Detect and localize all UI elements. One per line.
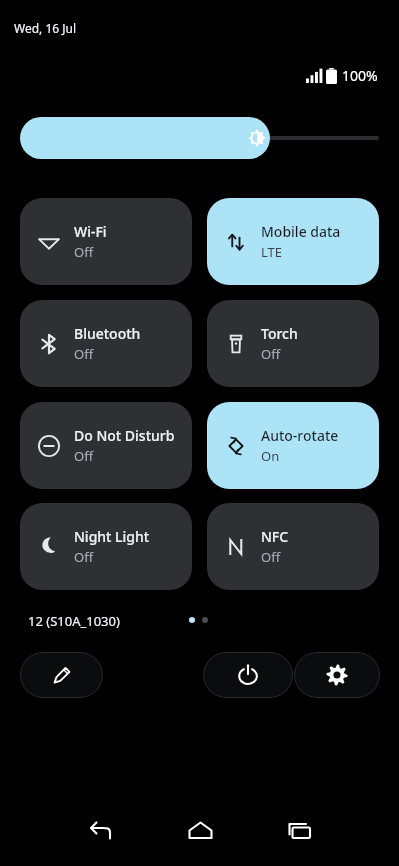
staticText: 12 (S10A_1030): [28, 612, 120, 630]
staticText: Auto-rotate: [261, 426, 339, 445]
staticText: Wi-Fi: [74, 222, 107, 241]
button[interactable]: Auto-rotate: [207, 402, 379, 489]
staticText: Off: [74, 548, 94, 566]
staticText: Off: [261, 548, 281, 566]
button[interactable]: NFC: [207, 503, 379, 590]
staticText: Mobile data: [261, 222, 341, 241]
staticText: Bluetooth: [74, 324, 141, 343]
staticText: Wed, 16 Jul: [14, 20, 77, 36]
staticText: LTE: [261, 243, 283, 261]
staticText: Off: [74, 243, 94, 261]
button[interactable]: Back: [74, 804, 126, 856]
button[interactable]: Recents: [273, 804, 325, 856]
button[interactable]: Torch: [207, 300, 379, 387]
staticText: On: [261, 447, 280, 465]
button[interactable]: Do Not Disturb: [20, 402, 192, 489]
staticText: Off: [74, 447, 94, 465]
button[interactable]: Night Light: [20, 503, 192, 590]
staticText: Off: [74, 345, 94, 363]
button[interactable]: Edit tiles: [20, 652, 103, 698]
staticText: 100%: [342, 66, 378, 85]
staticText: NFC: [261, 527, 289, 546]
button[interactable]: Power: [203, 652, 293, 698]
staticText: Night Light: [74, 527, 150, 546]
button[interactable]: Wi-Fi: [20, 198, 192, 285]
button[interactable]: Home: [174, 804, 226, 856]
staticText: Do Not Disturb: [74, 426, 175, 445]
staticText: Torch: [261, 324, 298, 343]
button[interactable]: Mobile data: [207, 198, 379, 285]
staticText: Off: [261, 345, 281, 363]
button[interactable]: Settings: [294, 652, 380, 698]
button[interactable]: Bluetooth: [20, 300, 192, 387]
button[interactable]: Brightness: [20, 117, 379, 159]
